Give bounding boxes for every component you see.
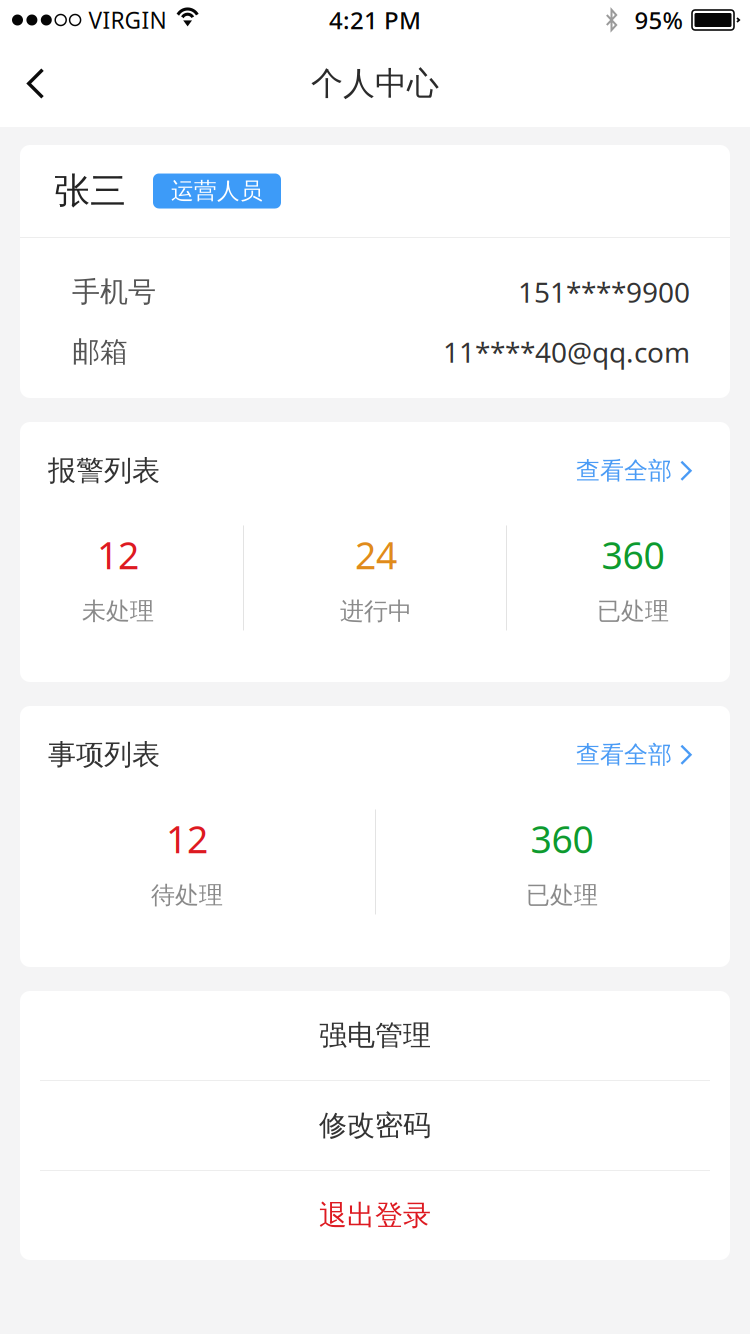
staticText: 360 [530,814,593,864]
staticText: 报警列表 [48,453,160,488]
staticText: 查看全部 [576,740,672,769]
staticText: 11****40@qq.com [443,333,690,371]
staticText: 95% [634,4,682,36]
button[interactable]: 查看全部 [576,732,692,777]
staticText: 进行中 [340,596,412,626]
staticText: 事项列表 [48,737,160,772]
staticText: 邮箱 [72,335,128,369]
staticText: 151****9900 [518,273,690,311]
staticText: 手机号 [72,275,156,309]
button[interactable]: 查看全部 [576,448,692,493]
staticText: 张三 [54,169,126,213]
staticText: VIRGIN [89,5,167,35]
staticText: 未处理 [82,596,154,626]
staticText: 个人中心 [311,64,439,103]
staticText: 12 [97,530,139,580]
staticText: 12 [166,814,208,864]
staticText: 4:21 PM [329,4,421,36]
staticText: 待处理 [151,880,223,910]
staticText: 查看全部 [576,456,672,485]
staticText: 360 [601,530,664,580]
staticText: 已处理 [597,596,669,626]
staticText: 修改密码 [319,1108,431,1143]
staticText: 运营人员 [171,177,263,205]
staticText: 24 [355,530,397,580]
staticText: 已处理 [526,880,598,910]
button[interactable]: 修改密码 [20,1081,730,1170]
button[interactable]: Back [7,52,64,114]
button[interactable]: 强电管理 [20,991,730,1080]
staticText: 退出登录 [319,1198,431,1233]
button[interactable]: 退出登录 [20,1171,730,1260]
staticText: 强电管理 [319,1018,431,1053]
